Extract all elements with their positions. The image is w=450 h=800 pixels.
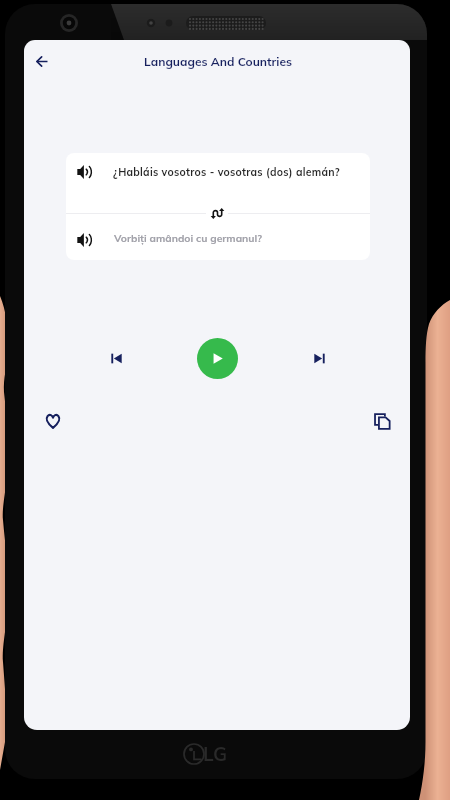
- button[interactable]: ¿Habláis vosotros - vosotras (dos) alemá…: [66, 153, 370, 213]
- button[interactable]: Vorbiți amândoi cu germanul?: [66, 214, 370, 260]
- button[interactable]: Copy: [366, 405, 398, 437]
- staticText: ¿Habláis vosotros - vosotras (dos) alemá…: [113, 165, 340, 178]
- button[interactable]: Next: [303, 342, 335, 374]
- button[interactable]: Favorite: [37, 405, 69, 437]
- staticText: Vorbiți amândoi cu germanul?: [114, 232, 262, 245]
- staticText: Languages And Countries: [144, 54, 293, 69]
- button[interactable]: Swap languages: [206, 204, 228, 220]
- staticText: LG: [203, 742, 227, 766]
- button[interactable]: Back: [24, 43, 59, 78]
- button[interactable]: Play: [197, 338, 238, 379]
- button[interactable]: Previous: [100, 342, 132, 374]
